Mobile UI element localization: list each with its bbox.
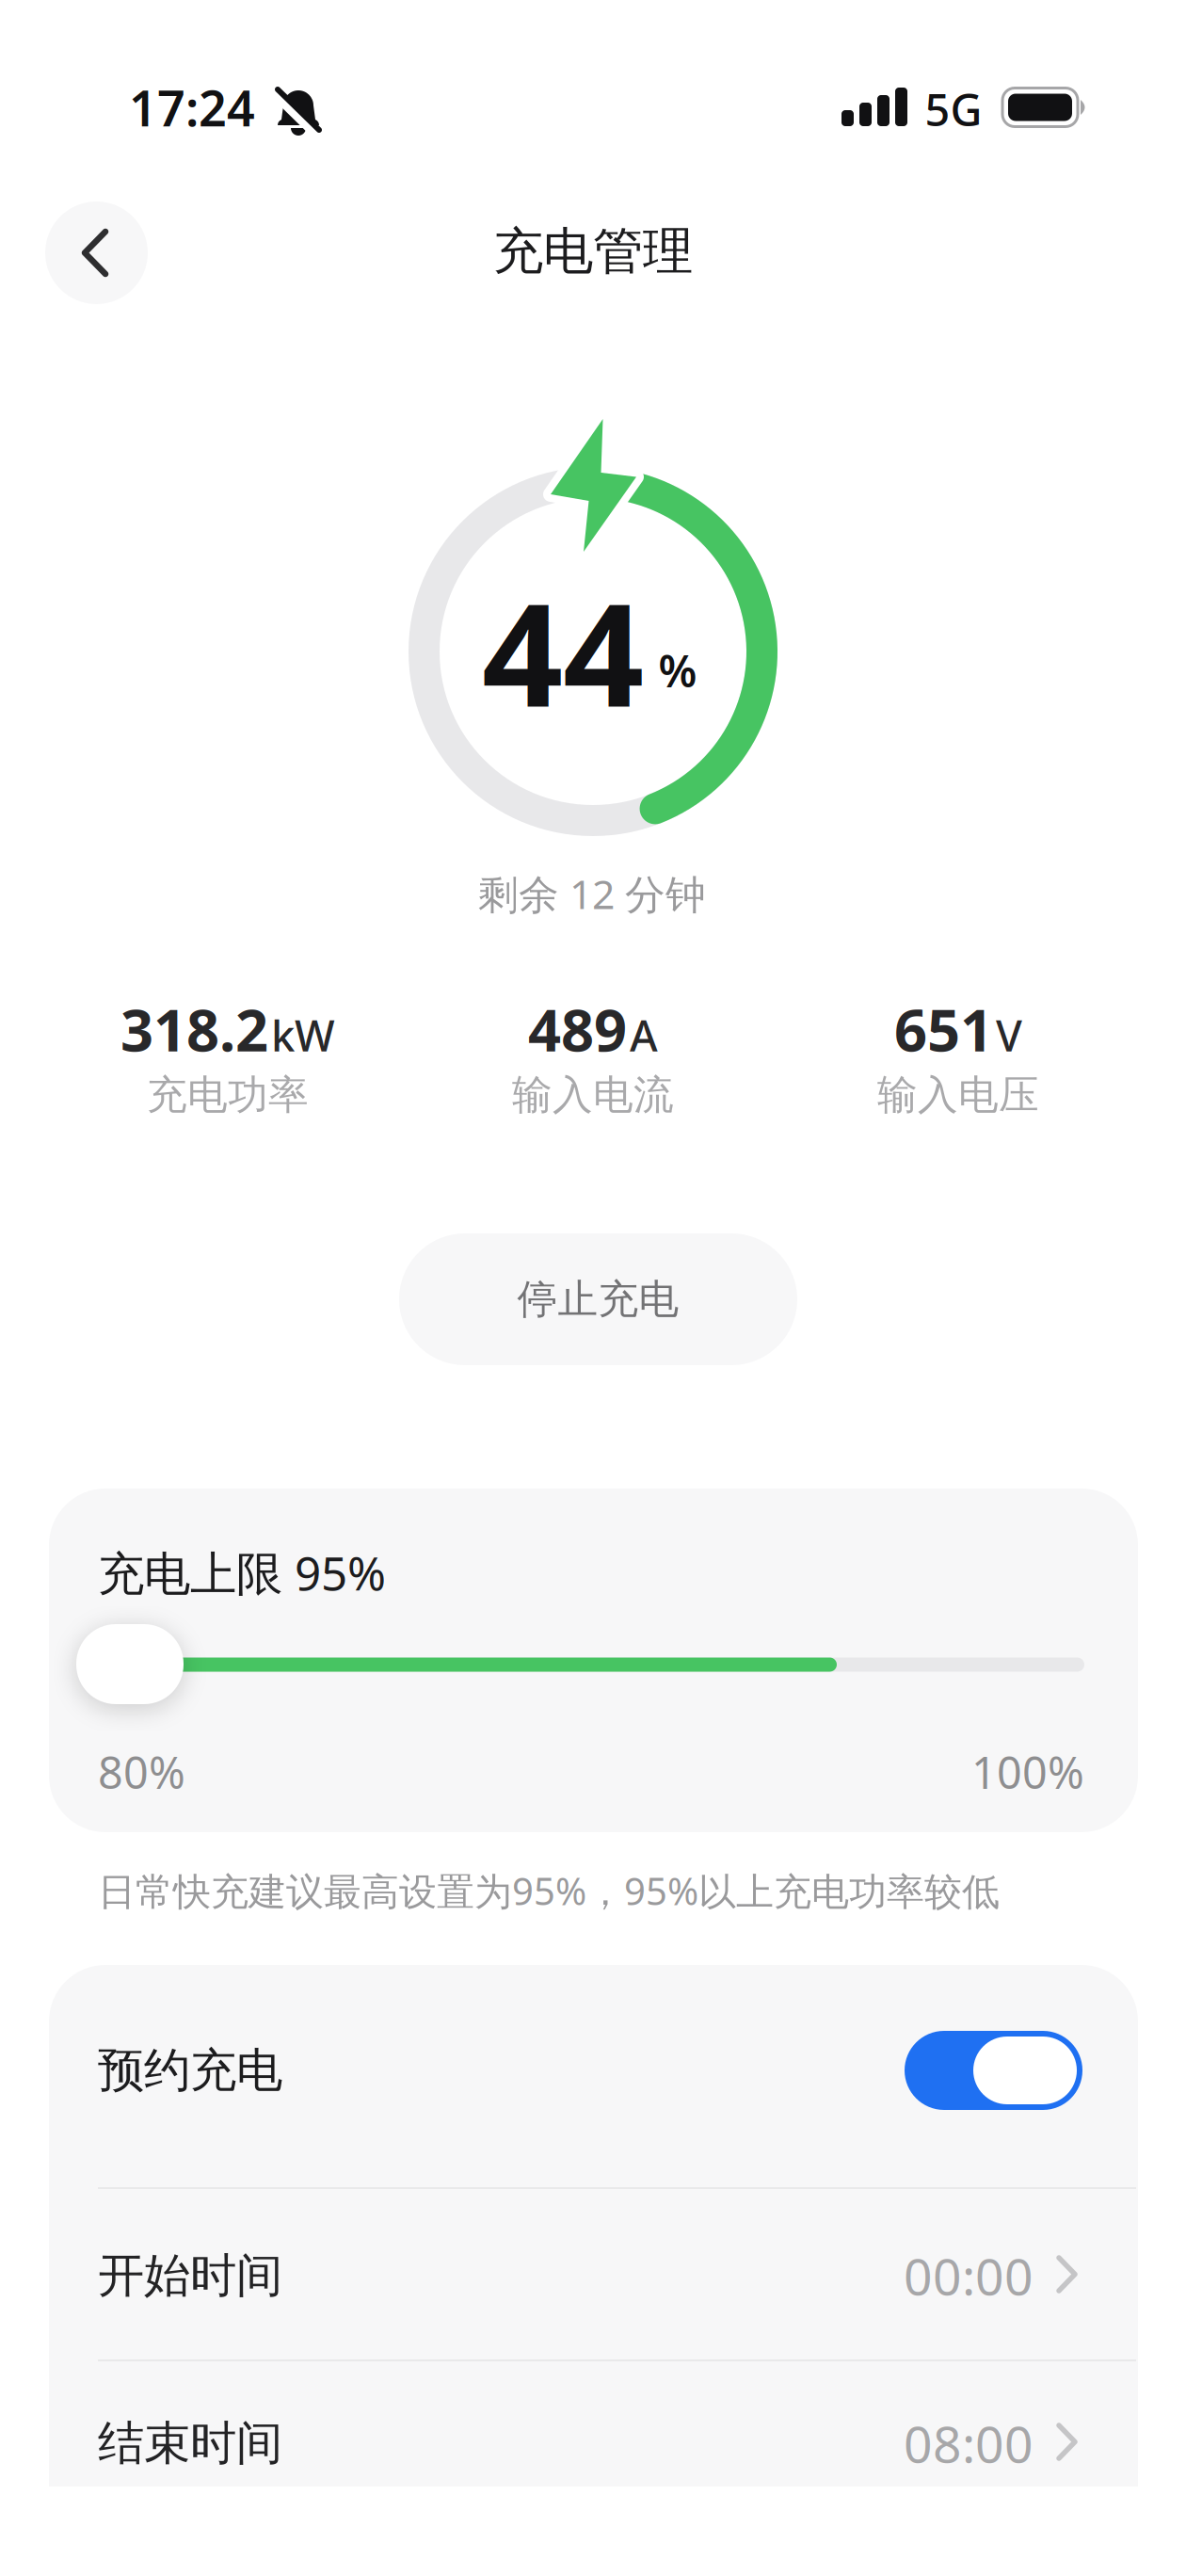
staticText: 充电上限 95% [98,1541,386,1603]
staticText: 充电功率 [147,1070,309,1120]
staticText: 开始时间 [98,2247,282,2304]
button[interactable]: 预约充电 on [905,2031,1082,2110]
staticText: A [630,1007,658,1063]
button[interactable]: Charging limit slider [76,1624,184,1704]
staticText: 输入电流 [512,1070,674,1120]
staticText: 充电管理 [493,221,693,282]
staticText: 08:00 [904,2410,1034,2477]
staticText: 日常快充建议最高设置为95%，95%以上充电功率较低 [98,1866,1000,1916]
staticText: kW [271,1007,335,1063]
staticText: 318.2 [120,991,268,1067]
button[interactable]: 开始时间 [0,2242,1186,2309]
staticText: 489 [528,991,627,1067]
button[interactable]: Back [45,201,148,304]
staticText: 结束时间 [98,2415,282,2472]
staticText: V [996,1007,1022,1063]
button[interactable]: 停止充电 [399,1233,797,1365]
staticText: 5G [925,80,982,138]
staticText: 80% [98,1743,185,1801]
button[interactable]: 结束时间 [0,2410,1186,2477]
staticText: 剩余 12 分钟 [478,867,706,920]
staticText: 00:00 [904,2242,1034,2309]
staticText: 预约充电 [98,2042,282,2099]
staticText: 44 [482,557,644,746]
staticText: % [658,641,697,700]
staticText: 651 [894,991,993,1067]
staticText: 停止充电 [517,1275,679,1324]
staticText: 100% [971,1743,1084,1801]
staticText: 17:24 [129,75,255,140]
staticText: 输入电压 [877,1070,1039,1120]
